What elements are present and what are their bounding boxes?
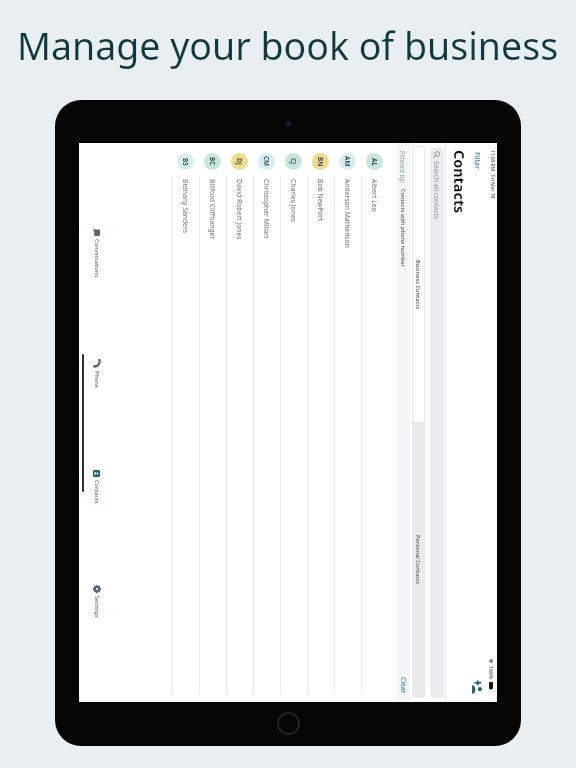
button[interactable]: AM <box>334 143 361 702</box>
staticText: BN <box>316 157 325 167</box>
staticText: Phone <box>93 371 101 389</box>
staticText: Filtered by: <box>399 151 407 183</box>
staticText: 100% <box>488 666 495 680</box>
staticText: Filter <box>472 152 482 170</box>
staticText: BC <box>208 157 217 166</box>
staticText: Contacts <box>93 480 101 504</box>
button[interactable]: Clear <box>398 676 409 695</box>
staticText: Business Contacts <box>414 260 422 310</box>
staticText: Manage your book of business <box>17 20 559 71</box>
button[interactable]: Add contact <box>472 680 482 694</box>
button[interactable]: CJ <box>280 143 307 702</box>
staticText: Clear <box>399 677 408 694</box>
button[interactable]: Filter <box>471 150 483 172</box>
button[interactable]: Search all contacts <box>430 148 444 698</box>
staticText: Christopher Milian <box>262 179 271 239</box>
button[interactable]: DJ <box>226 143 253 702</box>
staticText: Contacts with phone number <box>399 189 407 267</box>
button[interactable]: BC <box>199 143 226 702</box>
staticText: Search all contacts <box>432 161 441 220</box>
staticText: Bob NewPort <box>316 179 325 222</box>
staticText: Billford Cliffhanger <box>208 179 217 240</box>
button[interactable]: Personal Contacts <box>413 422 424 697</box>
staticText: Settings <box>93 596 101 618</box>
staticText: Personal Contacts <box>414 535 422 585</box>
button[interactable]: CM <box>253 143 280 702</box>
staticText: Contacts <box>449 150 469 214</box>
staticText: Charles Jones <box>289 179 298 222</box>
staticText: AM <box>343 156 352 167</box>
staticText: Conversations <box>93 239 101 278</box>
button[interactable]: Business Contacts <box>413 147 424 422</box>
staticText: CJ <box>289 158 298 165</box>
staticText: Albert Leo <box>370 179 379 212</box>
button[interactable]: Conversations <box>89 229 105 278</box>
staticText: AL <box>370 158 379 166</box>
button[interactable]: BN <box>307 143 334 702</box>
button[interactable]: AL <box>361 143 388 702</box>
button[interactable]: Contacts <box>89 470 105 504</box>
button[interactable]: BS <box>172 143 199 702</box>
staticText: DJ <box>235 158 244 165</box>
button[interactable]: Phone <box>89 359 105 389</box>
staticText: 11:09 PM Fri Mar 18 <box>489 150 496 199</box>
staticText: BS <box>181 158 190 166</box>
button[interactable]: Settings <box>89 585 105 618</box>
staticText: David Robert Jones <box>235 179 244 240</box>
staticText: CM <box>262 156 271 167</box>
staticText: Anderson Mathenson <box>343 179 352 248</box>
staticText: Bethany Sanders <box>181 179 190 233</box>
